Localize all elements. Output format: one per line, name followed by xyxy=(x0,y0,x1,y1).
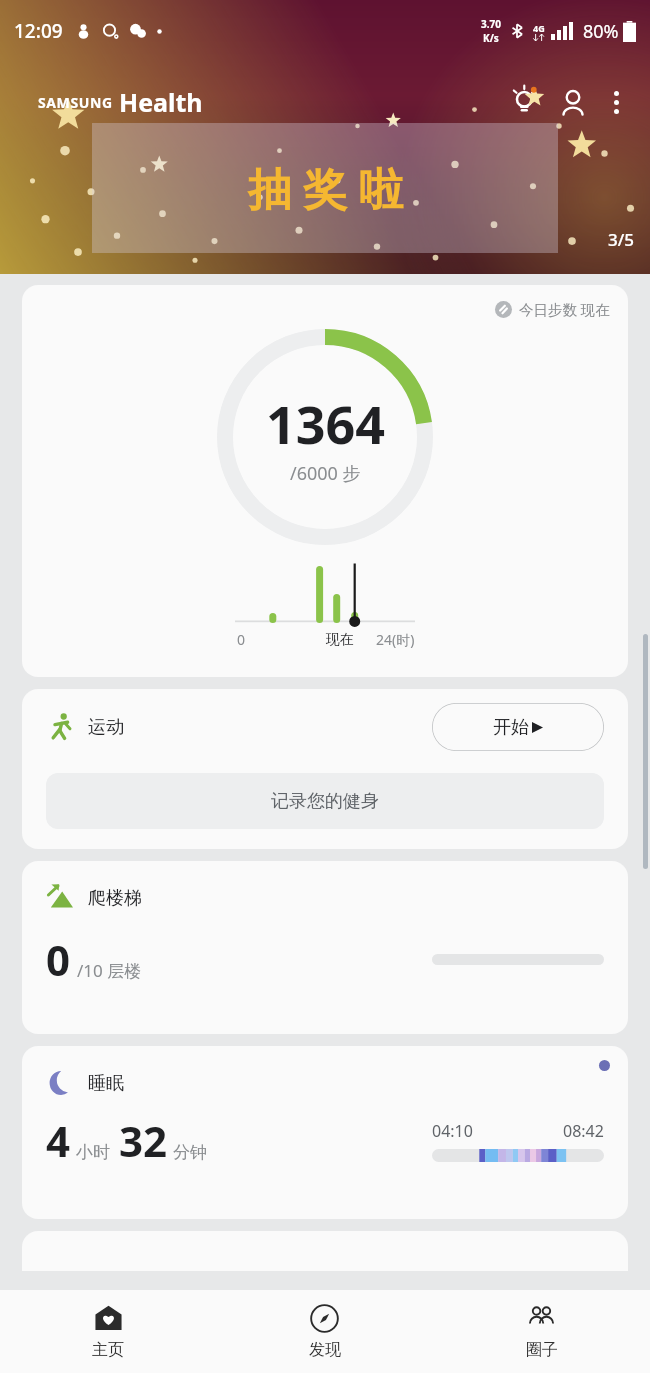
staticText: /10 层楼 xyxy=(77,959,142,982)
staticText: 爬楼梯 xyxy=(88,887,142,910)
button[interactable]: 开始 xyxy=(432,703,604,751)
staticText: 现在 xyxy=(326,631,354,649)
button[interactable]: 记录您的健身 xyxy=(46,773,604,829)
staticText: 08:42 xyxy=(563,1120,604,1142)
staticText: 小时 xyxy=(76,1142,110,1163)
staticText: 80% xyxy=(583,19,619,44)
staticText: /6000 步 xyxy=(290,461,361,486)
staticText: 1364 xyxy=(266,388,385,459)
staticText: 运动 xyxy=(88,716,124,739)
button[interactable]: More options xyxy=(596,82,636,122)
button[interactable]: 运动 xyxy=(22,689,628,849)
staticText: 24(时) xyxy=(376,630,415,649)
staticText: 4G xyxy=(533,22,545,34)
staticText: 开始 xyxy=(493,716,529,739)
staticText: 睡眠 xyxy=(88,1072,124,1095)
staticText: 0 xyxy=(237,630,246,649)
button[interactable]: 圈子 xyxy=(433,1290,650,1373)
staticText: 3/5 xyxy=(608,228,634,251)
button[interactable]: Profile xyxy=(550,79,596,125)
staticText: 发现 xyxy=(309,1340,341,1360)
staticText: 圈子 xyxy=(526,1340,558,1360)
staticText: 12:09 xyxy=(14,18,63,44)
staticText: 今日步数 现在 xyxy=(519,299,610,319)
staticText: 04:10 xyxy=(432,1120,473,1142)
staticText: 0 xyxy=(46,931,71,988)
staticText: Health xyxy=(119,85,203,119)
staticText: K/s xyxy=(483,31,499,45)
staticText: 3.70 xyxy=(481,17,501,31)
staticText: 32 xyxy=(119,1112,168,1169)
button[interactable]: 今日步数 现在 xyxy=(22,285,628,677)
button[interactable]: 爬楼梯 xyxy=(22,861,628,1034)
staticText: 记录您的健身 xyxy=(271,790,379,813)
staticText: 分钟 xyxy=(173,1142,207,1163)
staticText: 主页 xyxy=(92,1340,124,1360)
button[interactable]: 主页 xyxy=(0,1290,216,1373)
staticText: 抽 奖 啦 xyxy=(248,158,403,218)
button[interactable]: 发现 xyxy=(216,1290,433,1373)
staticText: SAMSUNG xyxy=(38,93,113,112)
button[interactable]: 睡眠 xyxy=(22,1046,628,1219)
button[interactable]: 抽 奖 啦 xyxy=(92,123,558,253)
button[interactable]: Tips xyxy=(504,79,550,125)
staticText: 4 xyxy=(46,1112,71,1169)
